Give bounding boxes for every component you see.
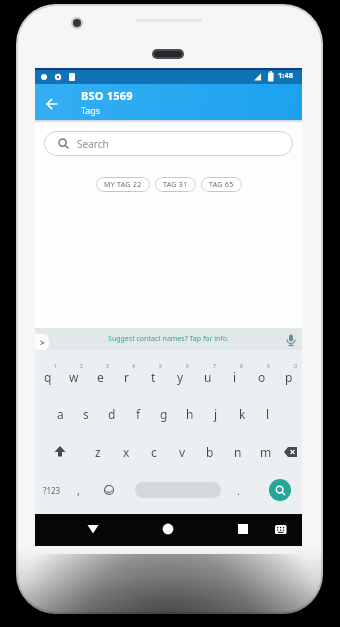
button[interactable]: o [248, 364, 275, 390]
staticText: l [266, 406, 270, 422]
button[interactable]: ?123 [35, 477, 69, 503]
staticText: c [151, 444, 157, 460]
staticText: g [160, 406, 168, 422]
button[interactable]: p [275, 364, 302, 390]
staticText: k [239, 406, 246, 422]
button[interactable] [270, 514, 295, 544]
button[interactable]: MY TAG 22 [96, 177, 150, 192]
staticText: 5 [159, 363, 162, 370]
button[interactable]: Search [44, 131, 293, 156]
staticText: n [234, 444, 242, 460]
button[interactable]: t [140, 364, 167, 390]
staticText: 3 [106, 363, 109, 370]
button[interactable]: r [113, 364, 140, 390]
button[interactable]: b [196, 439, 224, 465]
staticText: r [124, 369, 129, 385]
staticText: o [258, 369, 266, 385]
staticText: p [285, 369, 293, 385]
staticText: 0 [294, 363, 297, 370]
staticText: 7 [213, 363, 216, 370]
button[interactable]: w [61, 364, 87, 390]
staticText: i [233, 369, 237, 385]
button[interactable]: > [35, 334, 49, 351]
button[interactable] [269, 479, 291, 501]
button[interactable]: h [177, 401, 203, 427]
button[interactable]: a [48, 401, 73, 427]
button[interactable]: l [255, 401, 281, 427]
staticText: > [40, 337, 45, 348]
button[interactable] [135, 482, 221, 498]
button[interactable] [75, 514, 115, 544]
button[interactable]: s [73, 401, 99, 427]
staticText: b [206, 444, 214, 460]
staticText: h [186, 406, 194, 422]
button[interactable] [35, 84, 71, 120]
staticText: 2 [80, 363, 83, 370]
button[interactable]: g [151, 401, 177, 427]
staticText: s [83, 406, 89, 422]
button[interactable]: u [194, 364, 221, 390]
button[interactable]: y [167, 364, 194, 390]
staticText: 6 [186, 363, 189, 370]
staticText: ?123 [43, 485, 61, 496]
staticText: MY TAG 22 [104, 180, 142, 190]
button[interactable]: x [112, 439, 140, 465]
staticText: BSO 1569 [81, 88, 133, 103]
button[interactable]: d [99, 401, 125, 427]
staticText: 1 [54, 363, 57, 370]
button[interactable] [223, 514, 263, 544]
staticText: 8 [240, 363, 243, 370]
button[interactable]: e [87, 364, 113, 390]
staticText: 4 [132, 363, 135, 370]
staticText: v [179, 444, 186, 460]
button[interactable]: TAG 31 [155, 177, 196, 192]
staticText: j [214, 406, 218, 422]
staticText: 1:48 [278, 70, 300, 80]
button[interactable]: v [168, 439, 196, 465]
staticText: q [44, 369, 52, 385]
staticText: z [95, 444, 101, 460]
staticText: e [97, 369, 104, 385]
button[interactable]: f [125, 401, 151, 427]
button[interactable]: c [140, 439, 168, 465]
staticText: y [177, 369, 184, 385]
staticText: TAG 65 [209, 180, 234, 190]
button[interactable]: m [252, 439, 280, 465]
button[interactable] [97, 477, 121, 503]
button[interactable] [35, 439, 84, 465]
button[interactable] [285, 334, 297, 347]
staticText: d [108, 406, 116, 422]
staticText: a [57, 406, 64, 422]
button[interactable] [148, 514, 188, 544]
button[interactable]: . [227, 477, 249, 503]
staticText: x [123, 444, 130, 460]
staticText: f [136, 406, 141, 422]
button[interactable]: q [35, 364, 61, 390]
staticText: m [260, 444, 272, 460]
staticText: t [151, 369, 156, 385]
button[interactable]: n [224, 439, 252, 465]
button[interactable] [280, 439, 302, 465]
button[interactable]: Suggest contact names? Tap for info. [35, 334, 302, 344]
staticText: . [237, 483, 240, 498]
staticText: Tags [81, 104, 101, 116]
staticText: Search [77, 137, 109, 151]
staticText: TAG 31 [163, 180, 188, 190]
staticText: , [77, 483, 80, 498]
button[interactable]: j [203, 401, 229, 427]
button[interactable]: k [229, 401, 255, 427]
button[interactable]: TAG 65 [201, 177, 242, 192]
button[interactable]: i [221, 364, 248, 390]
staticText: u [204, 369, 212, 385]
button[interactable]: , [65, 477, 92, 503]
staticText: w [69, 369, 79, 385]
staticText: 9 [267, 363, 270, 370]
button[interactable]: z [84, 439, 112, 465]
